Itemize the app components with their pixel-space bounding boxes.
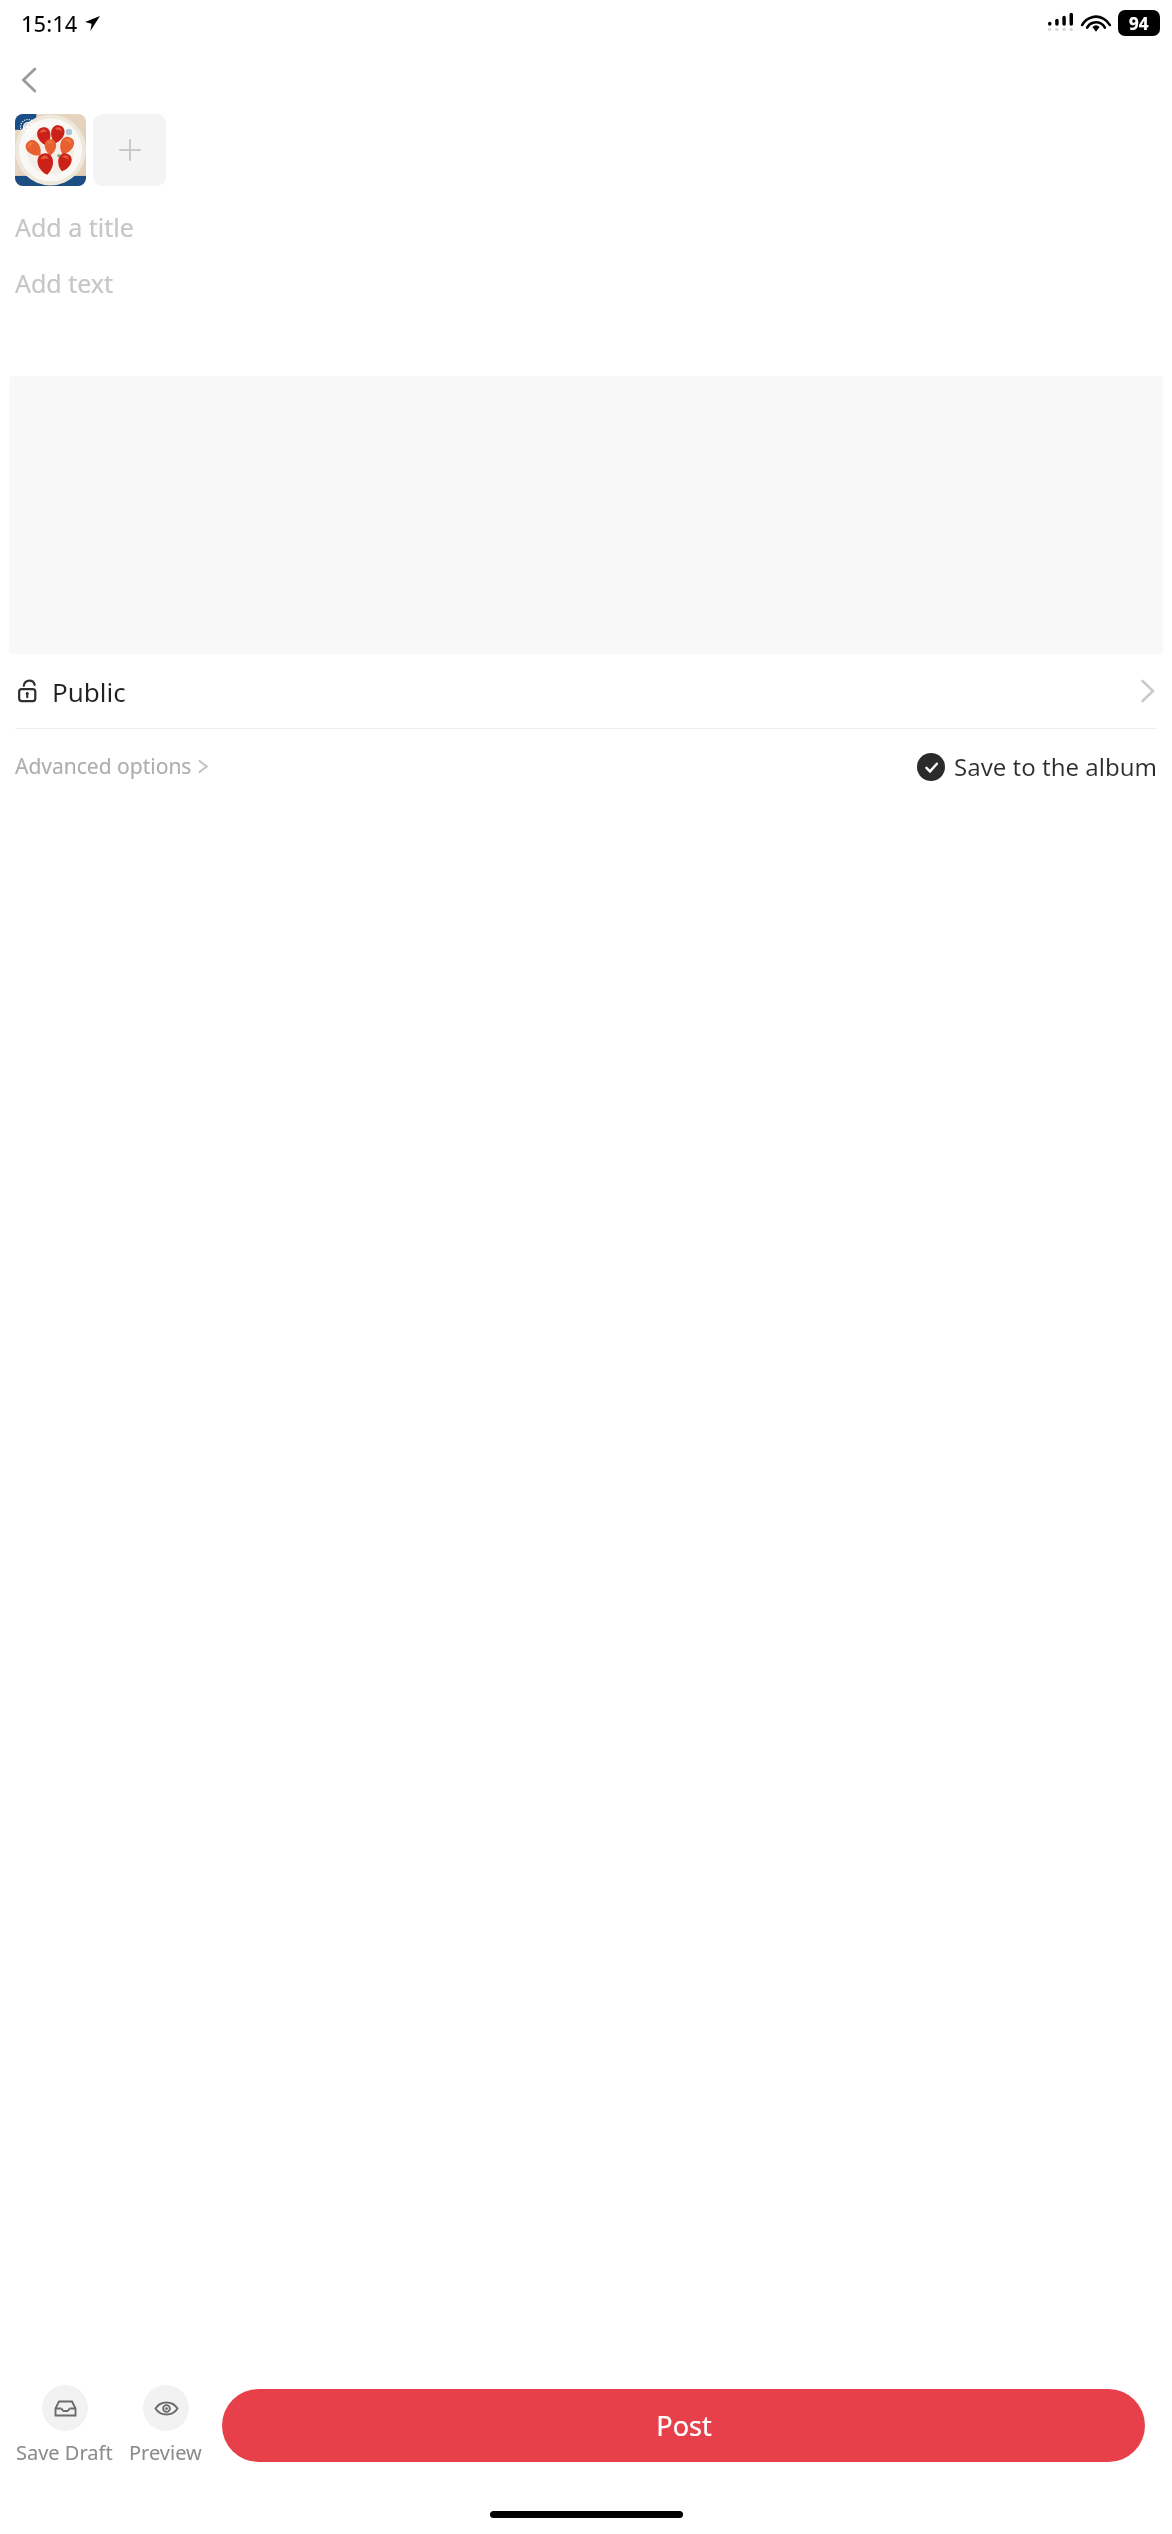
staticText: Post <box>656 2407 712 2444</box>
staticText: 15:14 <box>21 8 78 38</box>
button[interactable]: Public <box>0 654 1172 728</box>
staticText: Save to the album <box>954 750 1157 783</box>
button[interactable]: Post <box>222 2389 1145 2462</box>
button[interactable]: Add photo <box>93 114 166 186</box>
staticText: Preview <box>129 2439 202 2466</box>
button[interactable]: Save Draft <box>13 2385 116 2466</box>
button[interactable]: Save to the album <box>917 750 1157 783</box>
staticText: Add a title <box>15 210 134 244</box>
staticText: 94 <box>1129 12 1149 35</box>
staticText: Advanced options <box>15 752 192 781</box>
button[interactable]: Preview <box>126 2385 205 2466</box>
button[interactable]: Selected photo <box>15 114 86 186</box>
staticText: Save Draft <box>16 2439 113 2466</box>
button[interactable]: Back <box>8 58 52 102</box>
staticText: Public <box>52 674 126 709</box>
button[interactable]: Advanced options <box>15 752 210 781</box>
staticText: Add text <box>15 266 114 300</box>
